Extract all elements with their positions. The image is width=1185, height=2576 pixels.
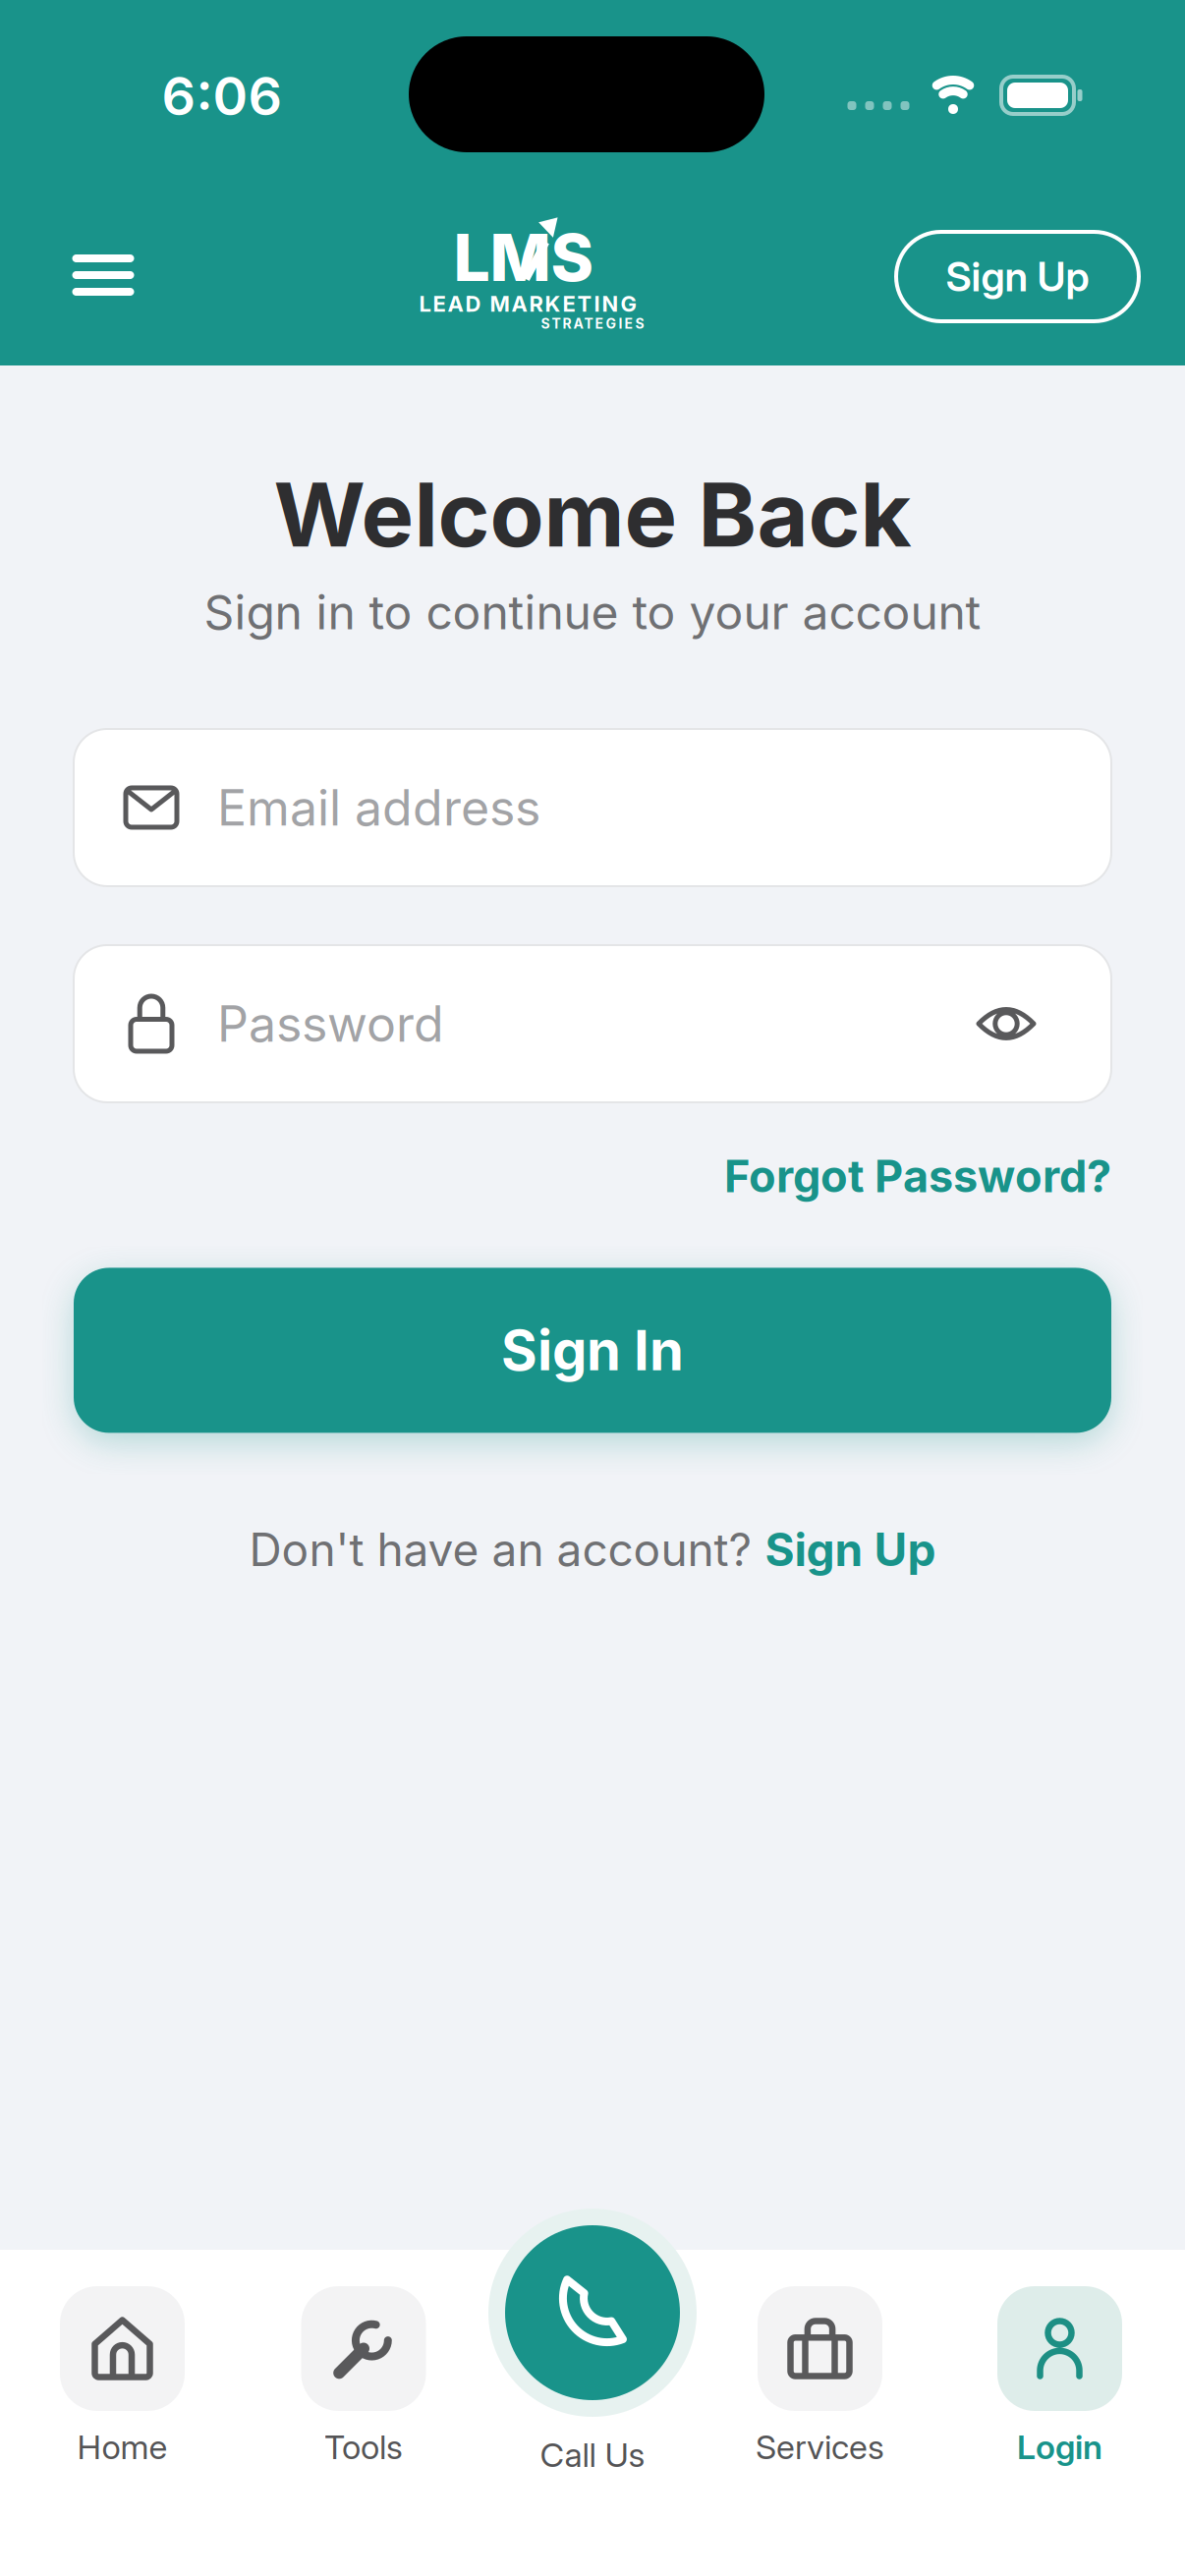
staticText: Services <box>756 2427 884 2467</box>
button[interactable]: Sign In <box>74 1268 1111 1433</box>
staticText: LMS <box>453 218 594 297</box>
staticText: Login <box>1017 2427 1102 2467</box>
button[interactable]: Home <box>14 2286 230 2467</box>
staticText: Forgot Password? <box>724 1149 1111 1203</box>
staticText: Home <box>77 2427 168 2467</box>
staticText: Call Us <box>540 2435 645 2475</box>
staticText: Welcome Back <box>274 461 911 568</box>
staticText: LEAD MARKETING <box>419 291 636 317</box>
staticText: Don't have an account? <box>249 1522 765 1577</box>
staticText: 6:06 <box>162 64 282 128</box>
staticText: Sign in to continue to your account <box>204 583 981 641</box>
staticText: Sign Up <box>765 1522 936 1577</box>
button[interactable]: Tools <box>255 2286 472 2467</box>
button[interactable]: Services <box>712 2286 928 2467</box>
button[interactable]: Show password <box>979 1007 1034 1040</box>
staticText: Sign Up <box>946 252 1089 301</box>
staticText: STRATEGIES <box>541 315 644 332</box>
button[interactable]: Forgot Password? <box>724 1149 1111 1203</box>
button[interactable]: Call Us <box>488 2209 697 2417</box>
staticText: Tools <box>324 2427 403 2467</box>
staticText: Email address <box>217 778 540 837</box>
staticText: Password <box>217 994 444 1053</box>
button[interactable]: Login <box>952 2286 1168 2467</box>
button[interactable]: Menu <box>72 254 134 296</box>
staticText: Sign In <box>501 1317 684 1384</box>
button[interactable]: Sign Up <box>896 232 1139 321</box>
button[interactable]: Don't have an account? <box>249 1522 936 1577</box>
